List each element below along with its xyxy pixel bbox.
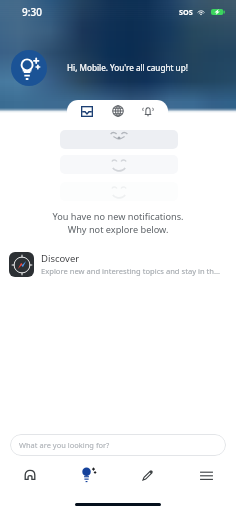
- staticText: Hi, Mobile. You're all caught up!: [67, 62, 188, 73]
- button[interactable]: Home: [0, 461, 59, 489]
- button[interactable]: What are you looking for?: [10, 434, 226, 456]
- button[interactable]: Discover: [0, 248, 236, 280]
- staticText: Explore new and interesting topics and s…: [41, 266, 221, 276]
- button[interactable]: Web: [107, 100, 129, 122]
- button[interactable]: Assistant: [11, 50, 47, 86]
- staticText: You have no new notifications. Why not e…: [0, 210, 236, 236]
- button[interactable]: Inbox: [76, 100, 98, 122]
- staticText: 9:30: [22, 5, 42, 19]
- button[interactable]: Notifications: [137, 100, 159, 122]
- button[interactable]: Menu: [177, 461, 236, 489]
- staticText: SOS: [179, 7, 193, 17]
- staticText: Discover: [41, 252, 80, 265]
- button[interactable]: Compose: [118, 461, 177, 489]
- button[interactable]: Ideas: [59, 461, 118, 489]
- staticText: What are you looking for?: [19, 440, 110, 450]
